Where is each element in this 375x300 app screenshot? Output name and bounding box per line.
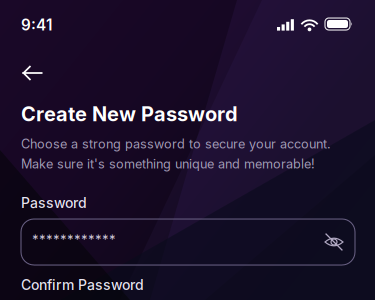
staticText: ************ [32,232,116,248]
staticText: Confirm Password [21,276,144,293]
staticText: Create New Password [21,102,238,126]
staticText: Password [21,194,87,211]
staticText: 9:41 [21,16,52,34]
staticText: Make sure it's something unique and memo… [21,156,315,172]
staticText: Choose a strong password to secure your … [21,136,331,152]
button[interactable]: Back [11,54,53,92]
button[interactable]: ************ [21,219,355,265]
